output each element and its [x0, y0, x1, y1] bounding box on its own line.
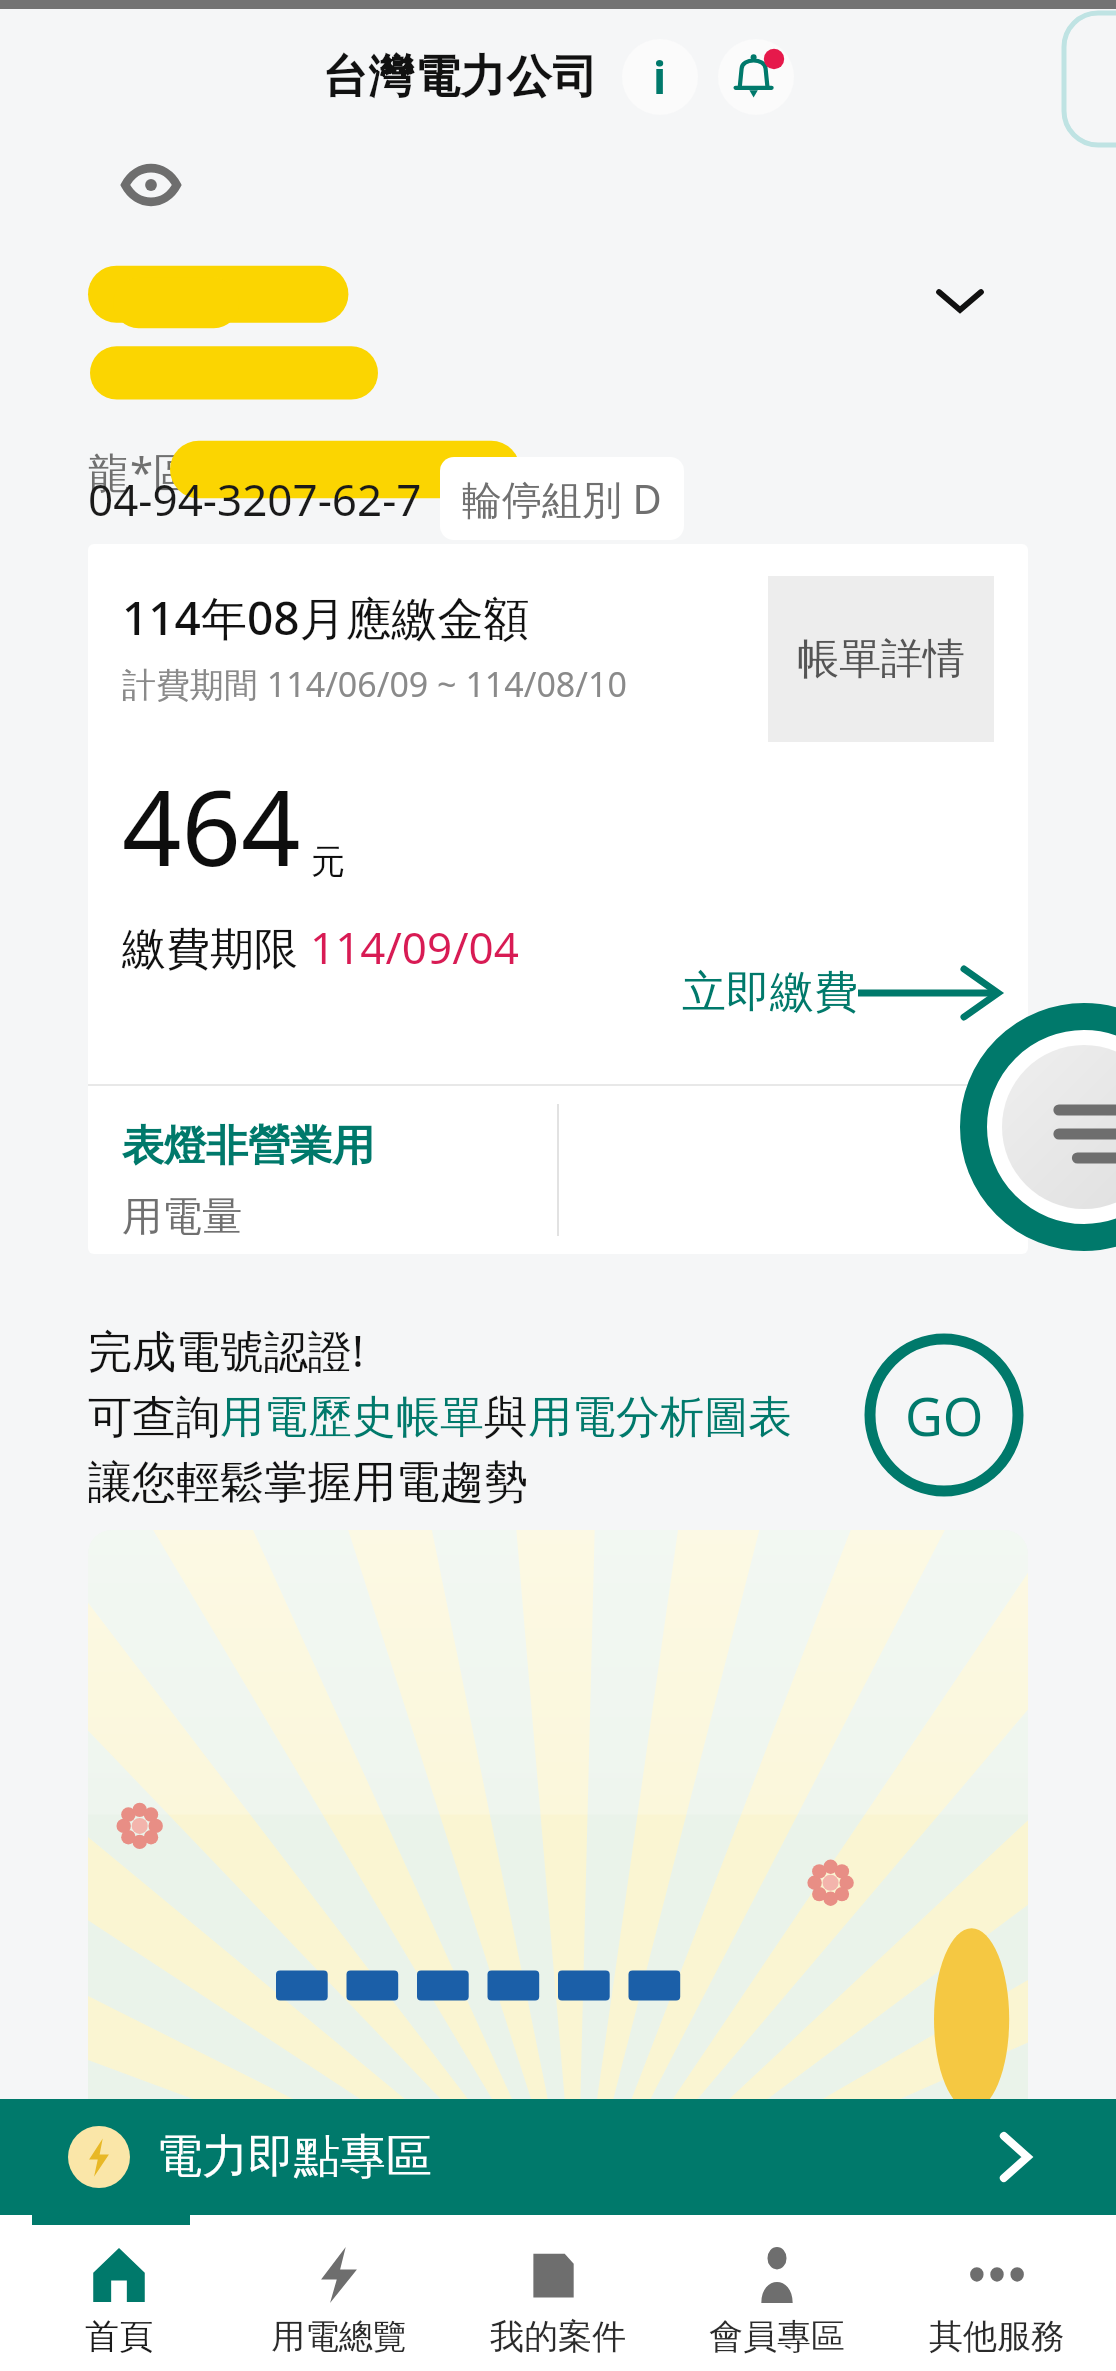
staticText: 會員專區 — [709, 2315, 845, 2358]
staticText: 用電總覽 — [271, 2315, 407, 2358]
staticText: 繳費期限 — [122, 917, 310, 977]
staticText: 用電歷史帳單 — [220, 1390, 484, 1445]
staticText: 帳單詳情 — [797, 633, 965, 686]
button[interactable]: 會員專區 — [677, 2233, 877, 2371]
button[interactable]: 電力即點專區 — [0, 2099, 1116, 2215]
button[interactable]: 立即繳費 — [682, 965, 998, 1020]
button[interactable]: Expand account — [922, 262, 998, 338]
button[interactable]: 我的案件 — [458, 2233, 658, 2371]
staticText: i — [653, 47, 667, 107]
staticText: 首頁 — [85, 2315, 153, 2358]
staticText: 用電量 — [122, 1191, 242, 1241]
staticText: 我的案件 — [490, 2315, 626, 2358]
button[interactable] — [88, 1530, 1028, 2099]
staticText: 龍*區*龍 — [88, 443, 261, 500]
staticText: 電力即點專區 — [156, 2128, 432, 2186]
button[interactable]: Quick menu — [966, 1009, 1116, 1245]
button[interactable]: GO — [868, 1339, 1020, 1491]
staticText: 立即繳費 — [682, 965, 858, 1020]
staticText: 可查詢 — [88, 1390, 220, 1445]
staticText: 讓您輕鬆掌握用電趨勢 — [88, 1455, 528, 1510]
staticText: 114/09/04 — [310, 917, 519, 977]
staticText: 其他服務 — [929, 2315, 1065, 2358]
button[interactable]: 輪停組別 D — [440, 457, 684, 540]
staticText: 元 — [311, 840, 345, 883]
button[interactable]: Notifications — [718, 39, 794, 115]
staticText: 114年08月應繳金額 — [122, 586, 530, 649]
staticText: 表燈非營業用 — [122, 1120, 374, 1173]
button[interactable]: 帳單詳情 — [768, 576, 994, 742]
button[interactable]: Toggle visibility — [118, 152, 184, 218]
button[interactable]: Information — [622, 39, 698, 115]
button[interactable]: 用電總覽 — [239, 2233, 439, 2371]
staticText: 完成電號認證! — [88, 1320, 364, 1380]
button[interactable]: 完成電號認證! — [0, 1300, 1116, 1530]
staticText: 計費期間 114/06/09 ~ 114/08/10 — [122, 661, 627, 707]
button[interactable]: 其他服務 — [897, 2233, 1097, 2371]
staticText: 台灣電力公司 — [322, 49, 598, 106]
button[interactable]: 首頁 — [19, 2233, 219, 2371]
staticText: 與 — [484, 1390, 528, 1445]
staticText: 04-94-3207-62-7 — [88, 469, 422, 529]
staticText: 464 — [122, 755, 301, 897]
staticText: GO — [905, 1380, 984, 1451]
staticText: 用電分析圖表 — [528, 1390, 792, 1445]
staticText: 輪停組別 D — [462, 471, 662, 526]
